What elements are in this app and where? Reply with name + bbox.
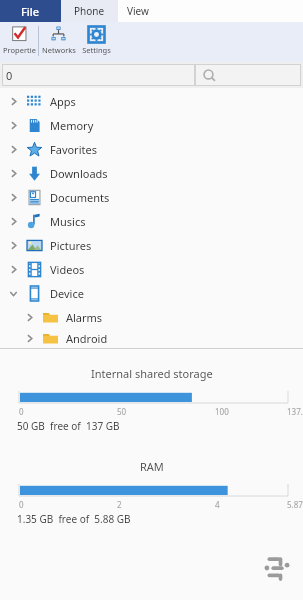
staticText: 0 xyxy=(19,499,24,510)
button[interactable]: Search xyxy=(195,64,301,86)
staticText: 5.878 xyxy=(287,499,303,511)
staticText: 1.35 GB free of 5.88 GB xyxy=(17,512,131,526)
button[interactable]: Apps xyxy=(0,89,303,113)
button[interactable]: Pictures xyxy=(0,233,303,257)
staticText: Android xyxy=(66,331,108,346)
staticText: Memory xyxy=(50,118,94,133)
button[interactable]: Propertie xyxy=(0,22,38,62)
staticText: Device xyxy=(50,286,84,301)
button[interactable]: Documents xyxy=(0,185,303,209)
staticText: 0 xyxy=(19,406,24,417)
button[interactable]: Videos xyxy=(0,257,303,281)
button[interactable]: Networks xyxy=(39,22,78,62)
button[interactable]: Alarms xyxy=(0,305,303,329)
button[interactable]: 0 xyxy=(2,64,195,86)
button[interactable]: File xyxy=(0,0,61,22)
staticText: 2 xyxy=(117,499,122,510)
staticText: 137.438 xyxy=(287,406,303,418)
staticText: Settings xyxy=(82,45,111,55)
staticText: Networks xyxy=(42,45,76,55)
staticText: 50 GB free of 137 GB xyxy=(17,419,120,433)
staticText: Propertie xyxy=(3,45,36,55)
staticText: Documents xyxy=(50,190,110,205)
staticText: Downloads xyxy=(50,166,108,181)
staticText: Favorites xyxy=(50,142,97,157)
staticText: 4 xyxy=(215,499,220,510)
button[interactable]: Downloads xyxy=(0,161,303,185)
staticText: RAM xyxy=(140,459,164,474)
staticText: Phone xyxy=(74,4,105,18)
button[interactable]: Device xyxy=(0,281,303,305)
staticText: 100 xyxy=(215,406,229,417)
staticText: Pictures xyxy=(50,238,92,253)
staticText: Alarms xyxy=(66,310,103,325)
button[interactable]: Options menu xyxy=(257,548,297,588)
staticText: Apps xyxy=(50,94,76,109)
staticText: 0 xyxy=(6,68,13,83)
staticText: File xyxy=(21,4,40,19)
button[interactable]: Android xyxy=(0,329,303,348)
button[interactable]: Favorites xyxy=(0,137,303,161)
staticText: View xyxy=(127,4,149,18)
button[interactable]: Memory xyxy=(0,113,303,137)
button[interactable]: Musics xyxy=(0,209,303,233)
button[interactable]: Settings xyxy=(78,22,115,62)
staticText: Musics xyxy=(50,214,86,229)
staticText: Videos xyxy=(50,262,85,277)
staticText: Internal shared storage xyxy=(91,366,213,381)
button[interactable]: Phone xyxy=(61,0,118,22)
button[interactable]: View xyxy=(118,0,303,22)
staticText: 50 xyxy=(117,406,127,417)
